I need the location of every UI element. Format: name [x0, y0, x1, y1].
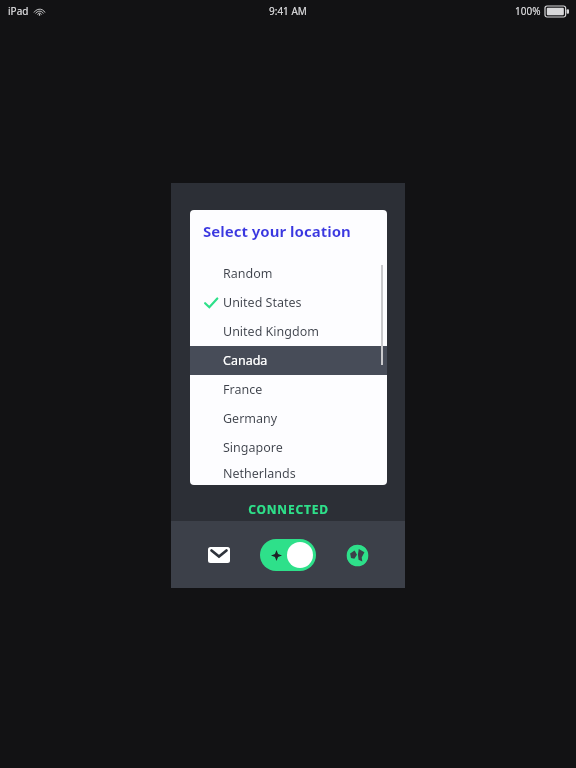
staticText: CONNECTED — [248, 501, 329, 517]
staticText: iPad — [8, 4, 29, 18]
button[interactable]: Netherlands — [190, 462, 387, 485]
staticText: Germany — [223, 410, 278, 427]
button[interactable]: Globe, change region — [337, 535, 377, 575]
button[interactable]: Random — [190, 259, 387, 288]
staticText: Canada — [223, 352, 268, 369]
staticText: Random — [223, 265, 273, 282]
staticText: Netherlands — [223, 465, 296, 482]
staticText: 100% — [515, 4, 541, 18]
staticText: France — [223, 381, 263, 398]
staticText: Select your location — [203, 221, 351, 241]
staticText: United States — [223, 294, 302, 311]
button[interactable]: Mail — [199, 535, 239, 575]
button[interactable]: Canada — [190, 346, 387, 375]
button[interactable]: United States — [190, 288, 387, 317]
button[interactable]: VPN connection toggle, on — [260, 539, 316, 571]
button[interactable]: France — [190, 375, 387, 404]
staticText: 9:41 AM — [269, 4, 307, 18]
button[interactable]: Singapore — [190, 433, 387, 462]
staticText: United Kingdom — [223, 323, 319, 340]
staticText: Singapore — [223, 439, 283, 456]
button[interactable]: United Kingdom — [190, 317, 387, 346]
button[interactable]: Germany — [190, 404, 387, 433]
